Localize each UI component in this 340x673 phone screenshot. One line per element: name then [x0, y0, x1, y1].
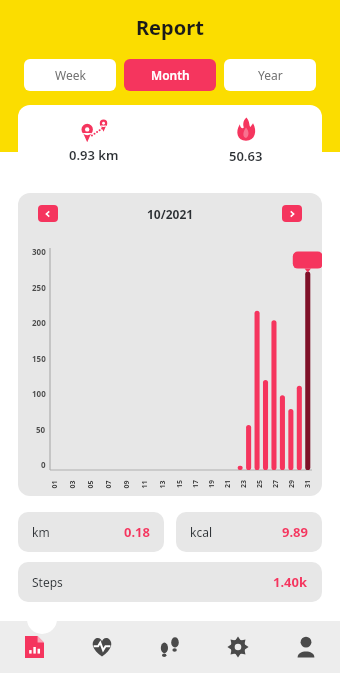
staticText: Month — [151, 67, 190, 83]
button[interactable]: Next month — [282, 205, 302, 222]
staticText: 0 — [41, 459, 46, 470]
staticText: Year — [258, 67, 283, 83]
staticText: 21 — [223, 480, 233, 488]
staticText: 300 — [32, 246, 46, 257]
staticText: 0.93 km — [69, 146, 119, 164]
button[interactable]: Month — [124, 59, 216, 91]
staticText: km — [32, 524, 50, 540]
staticText: 0.18 — [124, 523, 150, 541]
staticText: 250 — [32, 282, 46, 293]
staticText: 50 — [36, 424, 46, 435]
staticText: 03 — [67, 479, 77, 488]
button[interactable]: Profile — [272, 621, 340, 673]
staticText: 13 — [157, 479, 167, 488]
staticText: Steps — [32, 574, 63, 590]
staticText: 25 — [255, 480, 265, 488]
staticText: 200 — [32, 317, 46, 328]
staticText: 31 — [303, 480, 313, 488]
staticText: 23 — [239, 480, 249, 488]
staticText: 100 — [32, 388, 46, 399]
button[interactable]: kcal — [176, 512, 322, 552]
staticText: 150 — [32, 353, 46, 364]
button[interactable]: Previous month — [38, 205, 58, 222]
staticText: 50.63 — [229, 147, 263, 165]
staticText: 05 — [85, 479, 95, 488]
staticText: Week — [55, 67, 86, 83]
staticText: 15 — [175, 480, 185, 488]
button[interactable]: Report — [0, 621, 68, 673]
staticText: 07 — [103, 479, 113, 488]
button[interactable]: Week — [24, 59, 116, 91]
button[interactable]: Settings — [204, 621, 272, 673]
button[interactable]: Steps — [136, 621, 204, 673]
button[interactable]: Heart rate — [68, 621, 136, 673]
button[interactable]: Year — [224, 59, 316, 91]
staticText: 11 — [139, 479, 149, 488]
staticText: Report — [136, 14, 204, 41]
button[interactable]: Steps — [18, 562, 322, 602]
staticText: 1.40k — [273, 573, 308, 591]
staticText: 27 — [271, 480, 281, 488]
staticText: 29 — [287, 480, 297, 488]
staticText: 17 — [191, 480, 201, 488]
staticText: 01 — [49, 479, 59, 488]
button[interactable]: km — [18, 512, 164, 552]
staticText: kcal — [190, 524, 212, 540]
staticText: 09 — [121, 479, 131, 488]
button[interactable]: 0.93 km — [18, 105, 322, 177]
staticText: 19 — [207, 480, 217, 488]
staticText: 10/2021 — [147, 206, 194, 222]
staticText: 9.89 — [282, 523, 308, 541]
